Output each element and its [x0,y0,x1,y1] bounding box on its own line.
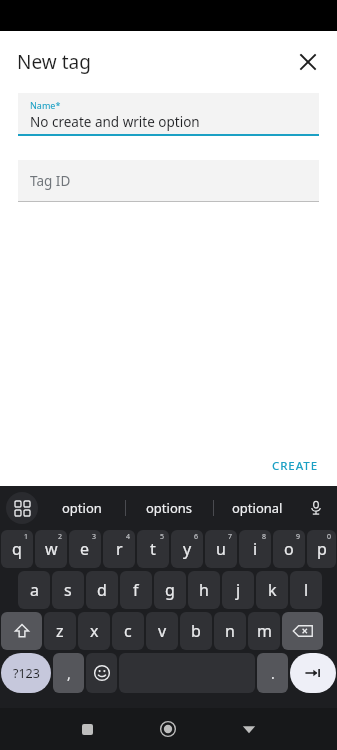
staticText: CREATE [272,458,318,474]
button[interactable]: key [1,612,42,650]
staticText: k [268,579,277,601]
button[interactable]: j [222,571,254,609]
staticText: j [236,579,241,601]
staticText: t [150,538,156,560]
staticText: a [30,579,39,601]
button[interactable]: ?123 [1,653,51,693]
button[interactable]: Recents [69,711,105,747]
button[interactable]: w [35,530,67,568]
staticText: d [97,579,107,601]
staticText: 3 [92,532,97,542]
button[interactable]: t [137,530,169,568]
staticText: f [133,579,139,601]
staticText: n [225,620,235,642]
button[interactable]: Next [290,653,336,693]
button[interactable]: u [205,530,237,568]
button[interactable]: z [44,612,76,650]
button[interactable]: p [307,530,336,568]
button[interactable]: Close [291,45,325,79]
button[interactable]: CREATE [266,452,324,480]
button[interactable]: s [52,571,84,609]
staticText: s [64,579,72,601]
staticText: 9 [296,532,301,542]
button[interactable]: k [256,571,288,609]
staticText: r [116,538,123,560]
staticText: p [317,538,327,560]
button[interactable]: v [146,612,178,650]
button[interactable]: Voice input [301,493,331,523]
staticText: g [165,579,175,601]
staticText: . [271,664,275,683]
button[interactable]: b [180,612,212,650]
staticText: m [257,620,272,642]
staticText: 5 [160,532,165,542]
staticText: i [253,538,258,560]
button[interactable]: . [257,653,288,693]
staticText: Tag ID [30,172,71,190]
button[interactable]: c [112,612,144,650]
button[interactable]: key [282,612,323,650]
button[interactable]: h [188,571,220,609]
staticText: ?123 [13,665,40,682]
staticText: o [284,538,294,560]
staticText: l [304,579,309,601]
staticText: New tag [17,49,91,75]
staticText: x [90,620,99,642]
staticText: 7 [228,532,233,542]
button[interactable]: , [53,653,84,693]
button[interactable]: n [214,612,246,650]
staticText: h [199,579,209,601]
button[interactable]: x [78,612,110,650]
staticText: q [12,538,22,560]
staticText: v [158,620,167,642]
staticText: e [80,538,90,560]
button[interactable]: r [103,530,135,568]
button[interactable]: optional [214,486,301,530]
staticText: z [56,620,64,642]
button[interactable]: key [86,653,117,693]
staticText: b [191,620,201,642]
staticText: c [124,620,132,642]
button[interactable]: f [120,571,152,609]
button[interactable]: q [1,530,33,568]
staticText: 0 [327,532,332,542]
staticText: option [62,499,102,517]
button[interactable]: e [69,530,101,568]
staticText: options [146,499,193,517]
staticText: 4 [126,532,131,542]
staticText: optional [232,499,283,517]
button[interactable]: Back [231,711,267,747]
button[interactable]: m [248,612,280,650]
button[interactable]: Home [150,711,186,747]
button[interactable]: option [38,486,125,530]
staticText: u [216,538,226,560]
staticText: w [45,538,58,560]
button[interactable]: a [18,571,50,609]
staticText: No create and write option [30,113,200,131]
button[interactable]: d [86,571,118,609]
staticText: 1 [24,532,29,542]
button[interactable]: Tag ID [18,160,319,201]
staticText: 6 [194,532,199,542]
button[interactable]: i [239,530,271,568]
button[interactable]: Toolbar [6,492,38,524]
button[interactable]: g [154,571,186,609]
staticText: Name* [30,99,61,111]
button[interactable]: options [126,486,213,530]
button[interactable]: y [171,530,203,568]
button[interactable]: o [273,530,305,568]
staticText: y [183,538,192,560]
staticText: 2 [58,532,63,542]
staticText: 8 [262,532,267,542]
staticText: , [67,664,71,683]
button[interactable]: l [290,571,322,609]
button[interactable]: Name* [18,93,319,134]
